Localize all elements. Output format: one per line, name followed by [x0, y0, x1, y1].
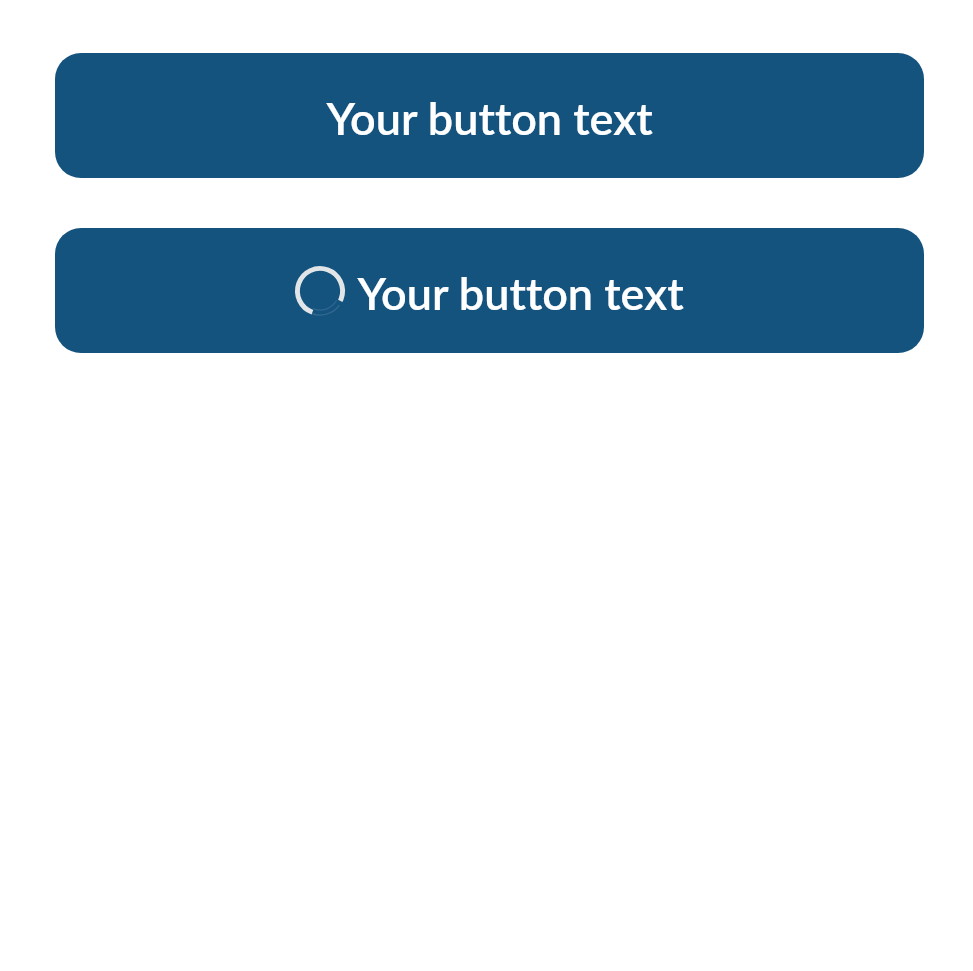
other: Loading: [295, 266, 345, 316]
button[interactable]: Your button text: [55, 53, 924, 178]
staticText: Your button text: [326, 91, 653, 145]
staticText: Your button text: [357, 266, 684, 320]
button[interactable]: Loading: [55, 228, 924, 353]
